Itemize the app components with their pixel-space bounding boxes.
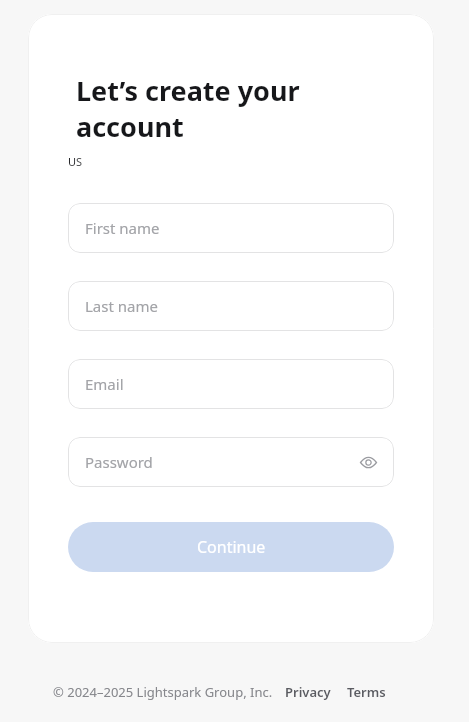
staticText: Privacy (285, 683, 331, 701)
button[interactable]: Last name (68, 281, 394, 331)
staticText: First name (85, 218, 160, 238)
staticText: Terms (347, 683, 386, 701)
button[interactable]: Continue (68, 522, 394, 572)
staticText: Continue (197, 536, 266, 558)
staticText: Password (85, 452, 153, 472)
staticText: Let’s create your account (76, 72, 300, 145)
button[interactable]: Password (68, 437, 394, 487)
button[interactable]: First name (68, 203, 394, 253)
staticText: Last name (85, 296, 158, 316)
button[interactable]: Email (68, 359, 394, 409)
staticText: © 2024–2025 Lightspark Group, Inc. (53, 683, 273, 701)
staticText: US (68, 154, 83, 169)
staticText: Email (85, 374, 124, 394)
button[interactable]: Privacy (282, 681, 334, 703)
button[interactable]: Show password (354, 448, 382, 476)
button[interactable]: Terms (344, 681, 389, 703)
